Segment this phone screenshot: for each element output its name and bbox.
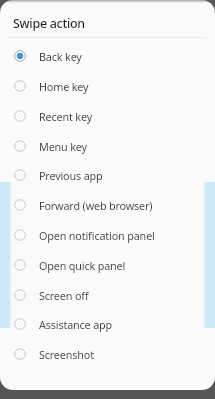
button[interactable]: Not selected [0,280,215,310]
button[interactable]: Not selected [0,250,215,280]
staticText: Recent key [39,109,92,124]
button[interactable]: Not selected [0,220,215,250]
other: Selected [14,50,26,62]
staticText: Menu key [39,139,87,154]
other: Not selected [14,259,26,271]
button[interactable]: Not selected [0,160,215,190]
button[interactable]: Not selected [0,190,215,220]
button[interactable]: Not selected [0,309,215,339]
staticText: Previous app [39,168,103,183]
staticText: Screenshot [39,347,94,362]
button[interactable]: Not selected [0,131,215,161]
staticText: Home key [39,79,89,94]
other: Not selected [14,169,26,181]
staticText: Screen off [39,288,89,303]
button[interactable]: Not selected [0,339,215,369]
staticText: Swipe action [13,15,85,32]
other: Not selected [14,140,26,152]
staticText: Open quick panel [39,258,126,273]
other: Not selected [14,80,26,92]
button[interactable]: Not selected [0,101,215,131]
staticText: Forward (web browser) [39,198,153,213]
other: Not selected [14,199,26,211]
staticText: Assistance app [39,317,113,332]
other: Not selected [14,110,26,122]
other: Not selected [14,289,26,301]
button[interactable]: Not selected [0,71,215,101]
other: Not selected [14,229,26,241]
other: Not selected [14,348,26,360]
other: Not selected [14,318,26,330]
button[interactable]: Selected [0,41,215,71]
staticText: Back key [39,49,82,64]
staticText: Open notification panel [39,228,155,243]
